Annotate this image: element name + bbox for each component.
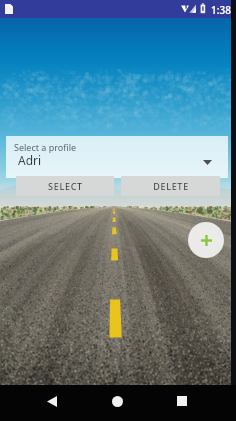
button[interactable]: SELECT <box>16 176 114 196</box>
button[interactable]: DELETE <box>121 176 220 196</box>
button[interactable]: Recents <box>160 385 204 421</box>
button[interactable]: Add profile <box>188 222 224 258</box>
staticText: SELECT <box>48 180 83 192</box>
button[interactable]: Select a profile <box>6 136 228 178</box>
staticText: 1:38 <box>211 3 231 17</box>
staticText: Select a profile <box>14 141 77 153</box>
button[interactable]: Home <box>95 385 139 421</box>
button[interactable]: Back <box>30 385 74 421</box>
staticText: Adri <box>18 152 42 168</box>
staticText: DELETE <box>153 180 189 192</box>
